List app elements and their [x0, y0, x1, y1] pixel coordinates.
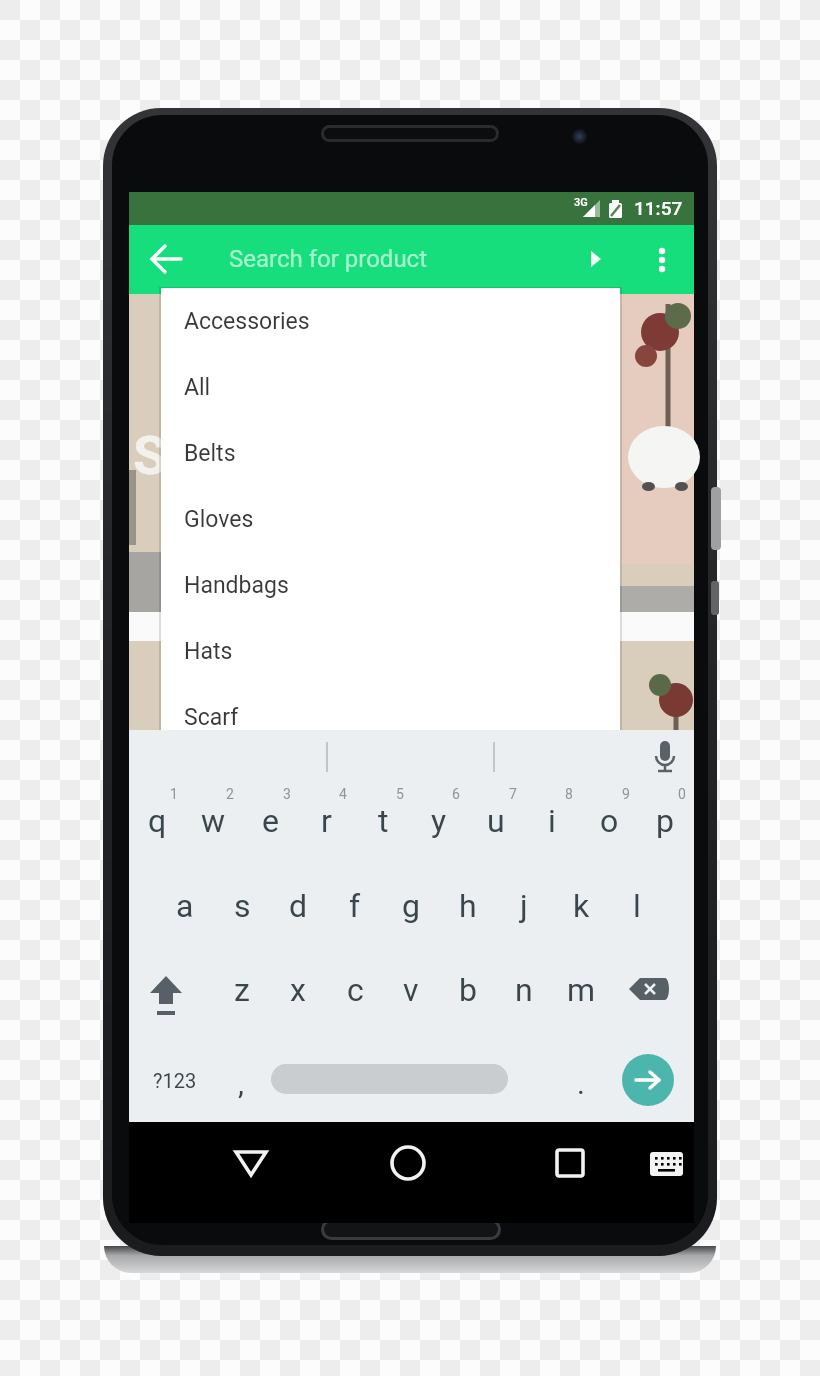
- button[interactable]: [540, 1137, 600, 1192]
- button[interactable]: [214, 954, 271, 1039]
- button[interactable]: [210, 230, 560, 290]
- button[interactable]: [440, 954, 497, 1039]
- staticText: i: [548, 802, 556, 840]
- staticText: S: [133, 424, 167, 487]
- staticText: ,: [238, 1066, 244, 1101]
- staticText: j: [520, 887, 528, 925]
- staticText: v: [403, 971, 419, 1009]
- button[interactable]: [270, 954, 327, 1039]
- button[interactable]: [270, 869, 327, 954]
- staticText: Search for product: [229, 245, 428, 273]
- button[interactable]: [636, 1137, 696, 1192]
- button[interactable]: [622, 1054, 674, 1106]
- button[interactable]: [161, 354, 620, 420]
- button[interactable]: [161, 288, 620, 354]
- staticText: b: [459, 971, 477, 1009]
- button[interactable]: [355, 784, 412, 869]
- button[interactable]: [140, 232, 192, 284]
- staticText: o: [600, 802, 619, 840]
- staticText: z: [234, 971, 250, 1009]
- staticText: f: [349, 887, 361, 925]
- staticText: .: [577, 1066, 585, 1101]
- button[interactable]: [383, 869, 440, 954]
- staticText: Belts: [184, 440, 236, 467]
- button[interactable]: [186, 784, 243, 869]
- staticText: All: [184, 374, 211, 401]
- button[interactable]: [440, 869, 497, 954]
- button[interactable]: [161, 420, 620, 486]
- staticText: 8: [565, 786, 573, 802]
- button[interactable]: [383, 954, 440, 1039]
- staticText: e: [262, 802, 279, 840]
- button[interactable]: [468, 784, 525, 869]
- button[interactable]: [129, 1039, 221, 1122]
- button[interactable]: [299, 784, 356, 869]
- staticText: 7: [509, 786, 517, 802]
- staticText: 3G: [574, 196, 588, 209]
- staticText: u: [487, 802, 505, 840]
- button[interactable]: [161, 486, 620, 552]
- staticText: p: [656, 802, 674, 840]
- button[interactable]: [242, 784, 299, 869]
- button[interactable]: [609, 869, 666, 954]
- staticText: Gloves: [184, 506, 254, 533]
- staticText: Scarf: [184, 704, 239, 731]
- button[interactable]: [327, 869, 384, 954]
- button[interactable]: [496, 954, 553, 1039]
- staticText: r: [321, 802, 332, 840]
- button[interactable]: [644, 238, 682, 282]
- staticText: Handbags: [184, 572, 289, 599]
- staticText: Hats: [184, 638, 233, 665]
- button[interactable]: [129, 954, 214, 1039]
- staticText: g: [402, 887, 420, 925]
- staticText: n: [515, 971, 533, 1009]
- staticText: 6: [452, 786, 460, 802]
- button[interactable]: [157, 869, 214, 954]
- staticText: x: [290, 971, 306, 1009]
- button[interactable]: [214, 869, 271, 954]
- staticText: Accessories: [184, 308, 310, 335]
- staticText: t: [378, 802, 389, 840]
- staticText: h: [459, 887, 477, 925]
- button[interactable]: [496, 869, 553, 954]
- staticText: 3: [283, 786, 291, 802]
- staticText: 2: [226, 786, 234, 802]
- button[interactable]: [327, 954, 384, 1039]
- button[interactable]: [581, 784, 638, 869]
- button[interactable]: [525, 784, 582, 869]
- button[interactable]: [561, 1039, 601, 1122]
- button[interactable]: [553, 869, 610, 954]
- staticText: w: [201, 802, 226, 840]
- staticText: 0: [678, 786, 686, 802]
- staticText: d: [289, 887, 308, 925]
- staticText: q: [148, 802, 167, 840]
- button[interactable]: [609, 954, 694, 1039]
- staticText: c: [347, 971, 364, 1009]
- staticText: l: [633, 887, 641, 925]
- button[interactable]: [129, 784, 186, 869]
- button[interactable]: [221, 1039, 261, 1122]
- button[interactable]: [161, 552, 620, 618]
- staticText: 11:57: [634, 197, 683, 219]
- staticText: 4: [339, 786, 347, 802]
- button[interactable]: [378, 1137, 438, 1192]
- staticText: ?123: [153, 1069, 197, 1092]
- button[interactable]: [638, 784, 695, 869]
- button[interactable]: [221, 1137, 281, 1192]
- staticText: 5: [396, 786, 404, 802]
- staticText: k: [573, 887, 590, 925]
- button[interactable]: [412, 784, 469, 869]
- button[interactable]: [271, 1064, 508, 1094]
- staticText: 1: [170, 786, 178, 802]
- staticText: y: [431, 802, 447, 840]
- button[interactable]: [129, 730, 694, 784]
- staticText: a: [176, 887, 194, 925]
- staticText: 9: [622, 786, 630, 802]
- button[interactable]: [161, 618, 620, 684]
- staticText: s: [234, 887, 251, 925]
- button[interactable]: [553, 954, 610, 1039]
- staticText: m: [567, 971, 596, 1009]
- button[interactable]: [161, 684, 620, 750]
